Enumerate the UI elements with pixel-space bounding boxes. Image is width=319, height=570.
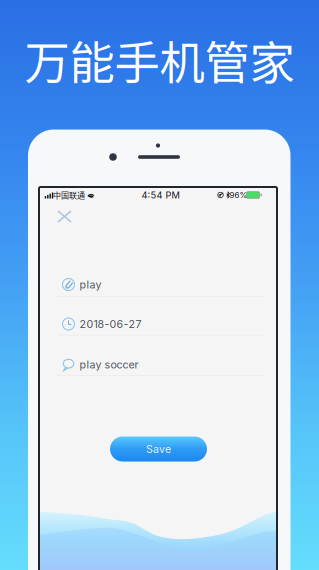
staticText: Save	[146, 442, 171, 455]
staticText: 96%	[229, 190, 247, 200]
button[interactable]: Close	[51, 204, 78, 229]
staticText: 2018-06-27	[79, 317, 141, 330]
staticText: 万能手机管家	[24, 27, 294, 93]
staticText: play soccer	[79, 358, 138, 371]
staticText: 4:54 PM	[141, 189, 179, 201]
button[interactable]: 2018-06-27	[40, 308, 276, 340]
button[interactable]: play soccer	[40, 348, 276, 380]
staticText: play	[79, 278, 101, 291]
staticText: 中国联通	[53, 189, 85, 201]
button[interactable]: play	[40, 268, 276, 300]
button[interactable]: Save	[110, 436, 207, 461]
